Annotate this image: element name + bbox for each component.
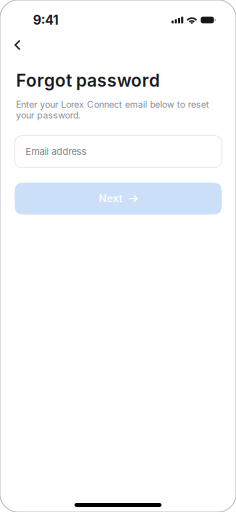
staticText: Forgot password: [16, 70, 160, 91]
button[interactable]: Back: [4, 36, 30, 54]
staticText: Next: [99, 192, 123, 205]
button[interactable]: Email address: [15, 136, 222, 168]
staticText: Email address: [26, 146, 87, 157]
button[interactable]: Next: [15, 183, 222, 215]
staticText: Enter your Lorex Connect email below to …: [16, 99, 209, 121]
staticText: 9:41: [33, 12, 59, 28]
